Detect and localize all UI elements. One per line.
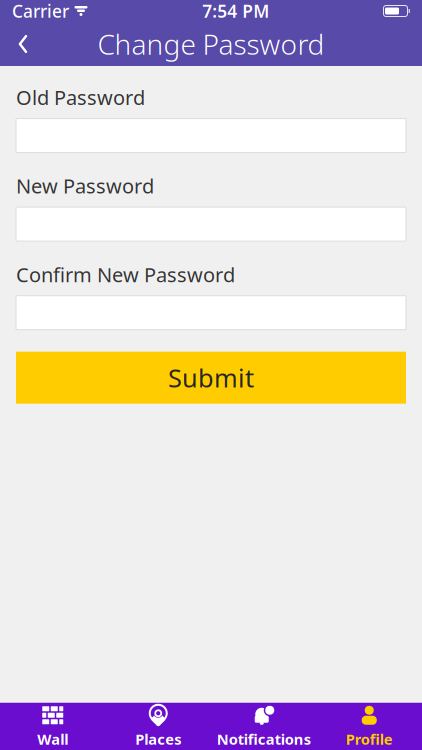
button[interactable]: Old Password	[16, 119, 406, 153]
staticText: Carrier	[12, 0, 69, 22]
button[interactable]: Profile	[316, 703, 422, 750]
staticText: Notifications	[217, 729, 311, 749]
staticText: Places	[135, 729, 181, 749]
button[interactable]: Confirm New Password	[16, 296, 406, 330]
staticText: Submit	[168, 361, 254, 394]
button[interactable]: Places	[105, 703, 211, 750]
staticText: Confirm New Password	[16, 261, 235, 288]
button[interactable]: Submit	[16, 352, 406, 404]
button[interactable]: New Password	[16, 207, 406, 241]
staticText: Wall	[37, 729, 68, 749]
button[interactable]: Notifications	[211, 703, 316, 750]
button[interactable]: Back	[0, 22, 46, 66]
staticText: Profile	[346, 729, 393, 749]
staticText: Old Password	[16, 84, 145, 111]
button[interactable]: Wall	[0, 703, 105, 750]
staticText: New Password	[16, 173, 154, 199]
staticText: Change Password	[97, 25, 324, 63]
staticText: 7:54 PM	[202, 0, 269, 22]
